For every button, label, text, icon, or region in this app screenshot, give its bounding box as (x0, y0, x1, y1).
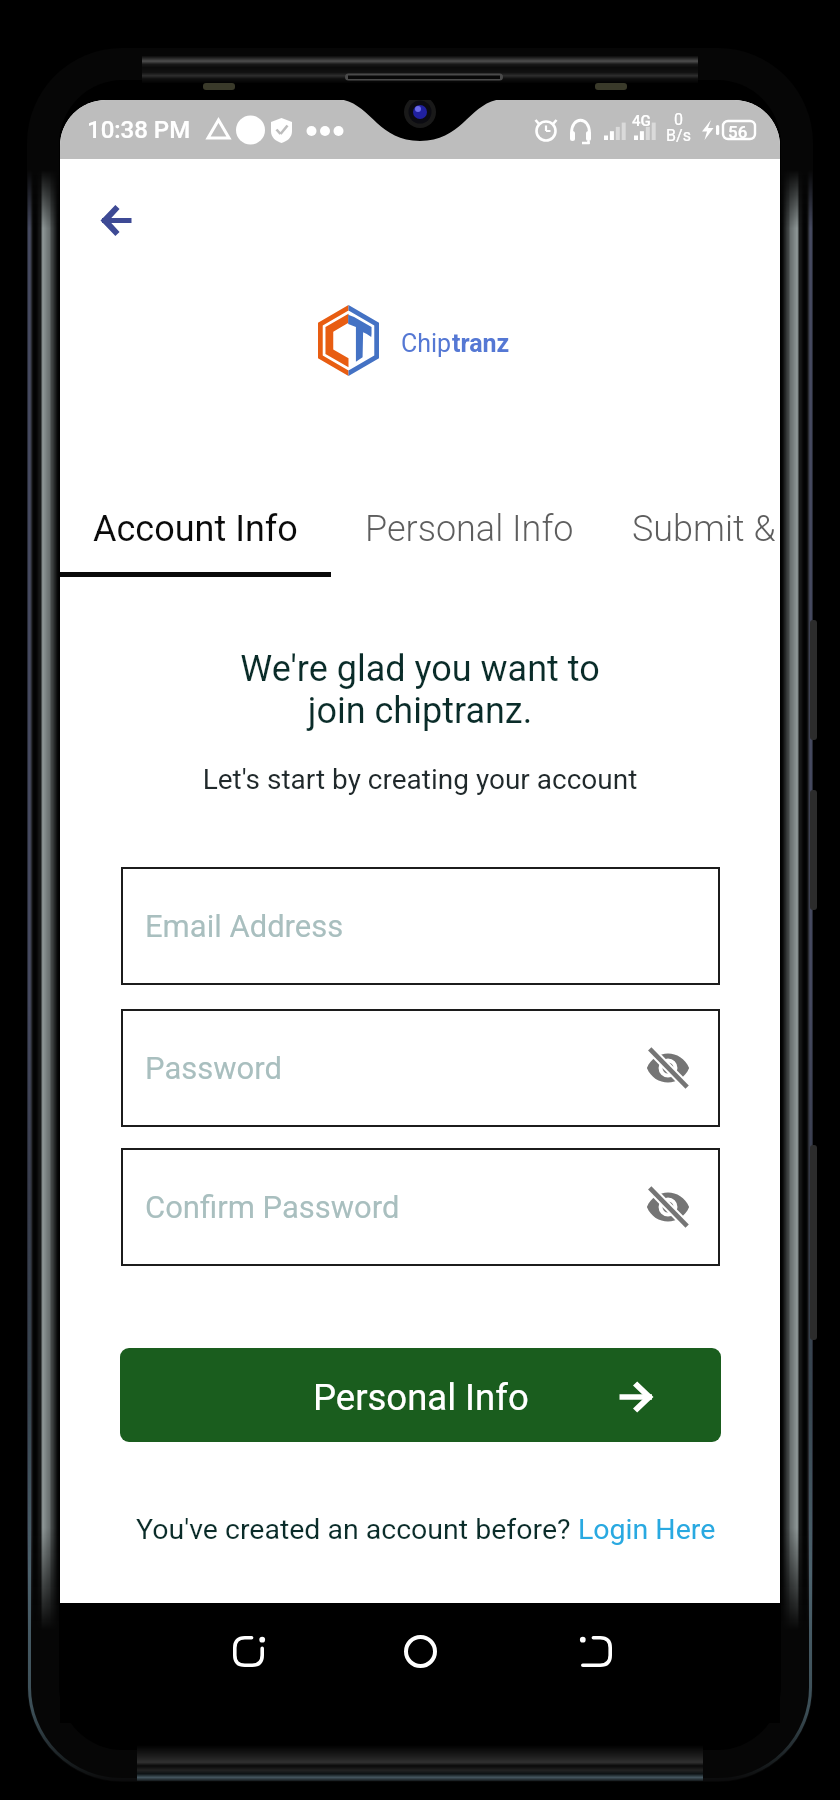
button[interactable]: Show password (644, 1044, 692, 1092)
staticText: Personal Info (313, 1376, 529, 1419)
staticText: 4G (632, 112, 651, 130)
button[interactable]: Submit & Finish (608, 493, 780, 565)
button[interactable]: Personal Info (120, 1348, 721, 1442)
button[interactable]: Back (88, 192, 144, 248)
button[interactable]: Home (393, 1624, 447, 1678)
button[interactable]: Confirm Password (121, 1148, 720, 1266)
staticText: 56 (728, 122, 748, 142)
staticText: Password (145, 1050, 282, 1086)
staticText: We're glad you want to join chiptranz. (60, 648, 780, 732)
staticText: You've created an account before? (136, 1513, 578, 1546)
staticText: 10:38 PM (87, 116, 191, 144)
button[interactable]: Personal Info (331, 493, 608, 565)
staticText: Account Info (93, 508, 298, 550)
button[interactable]: Recent apps (221, 1624, 275, 1678)
button[interactable]: Password (121, 1009, 720, 1127)
staticText: Personal Info (365, 508, 574, 550)
button[interactable]: Back (569, 1624, 623, 1678)
button[interactable]: Email Address (121, 867, 720, 985)
staticText: tranz (452, 329, 510, 358)
staticText: Chip (401, 329, 452, 358)
button[interactable]: Show password (644, 1183, 692, 1231)
staticText: 0 B/s (666, 110, 691, 145)
staticText: Confirm Password (145, 1189, 400, 1225)
button[interactable]: Account Info (60, 493, 331, 565)
staticText: Submit & Finish (632, 508, 780, 550)
staticText: Email Address (145, 908, 344, 944)
button[interactable]: Login Here (578, 1513, 716, 1546)
staticText: Let's start by creating your account (60, 763, 780, 796)
